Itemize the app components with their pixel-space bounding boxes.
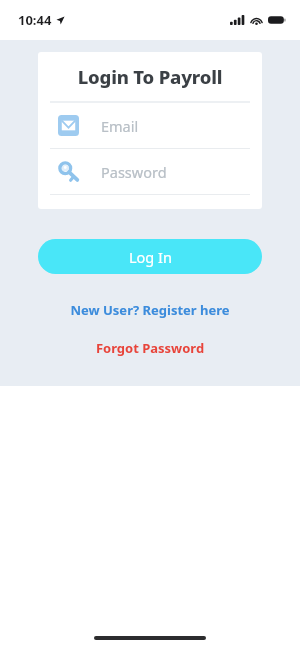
button[interactable]: Email [38, 103, 262, 149]
staticText: Login To Payroll [38, 64, 262, 89]
button[interactable]: Log In [38, 239, 262, 274]
staticText: Email [101, 116, 139, 136]
staticText: 10:44 [18, 11, 52, 29]
other: Password [58, 161, 79, 182]
staticText: Log In [129, 247, 172, 267]
button[interactable]: Password [38, 149, 262, 195]
staticText: Password [101, 162, 167, 182]
button[interactable]: Forgot Password [0, 337, 300, 359]
other: Email [58, 115, 79, 136]
button[interactable]: New User? Register here [0, 299, 300, 321]
